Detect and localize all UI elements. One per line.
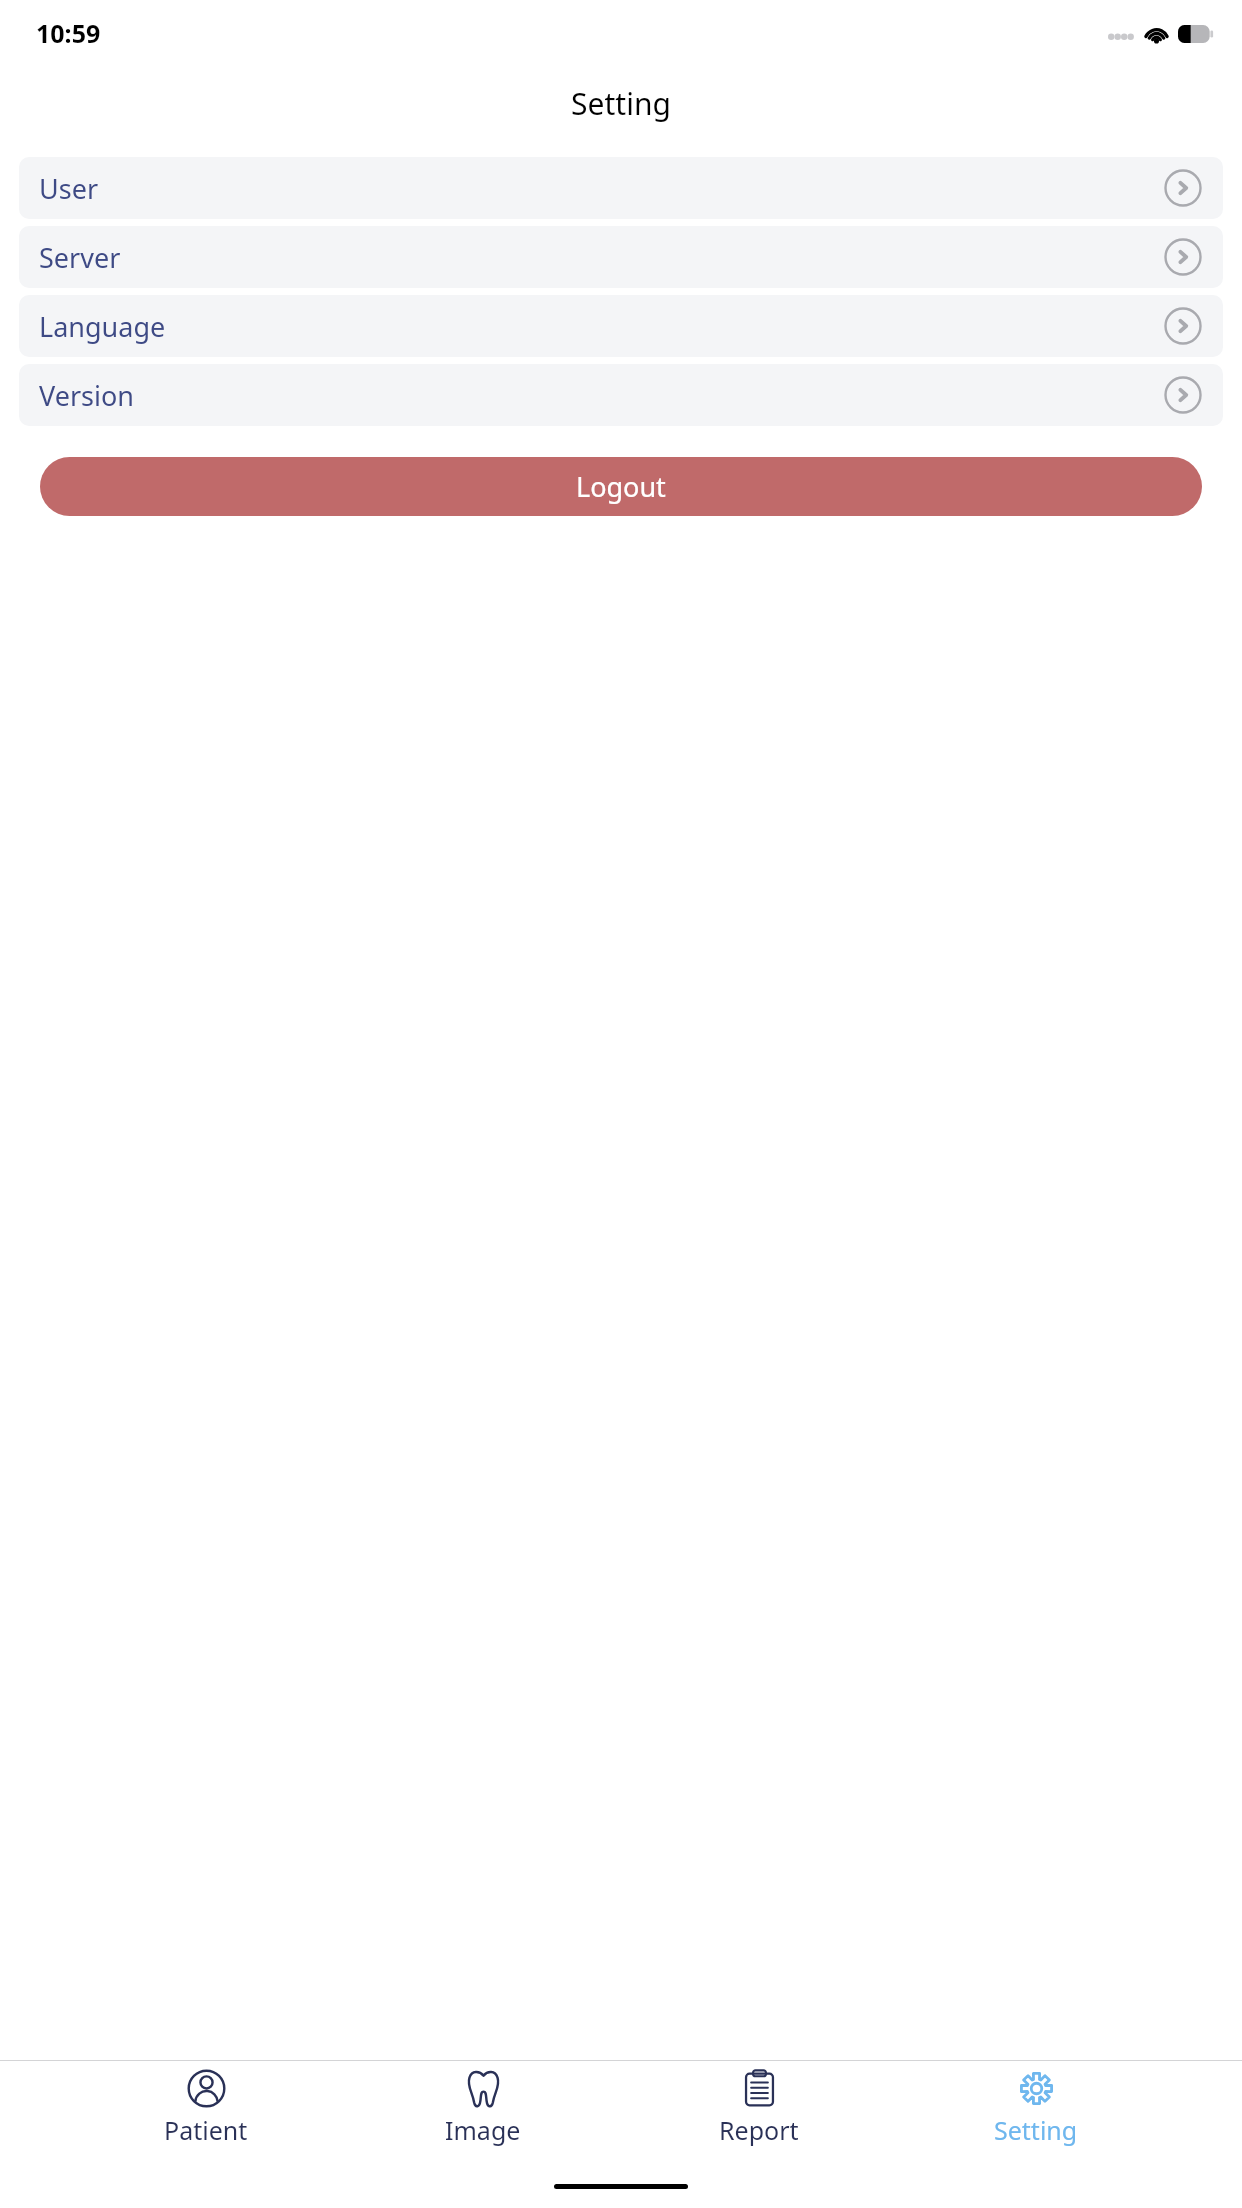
staticText: Version: [39, 377, 134, 414]
button[interactable]: Language: [19, 295, 1223, 357]
staticText: 10:59: [36, 16, 101, 50]
staticText: Server: [39, 239, 121, 276]
button[interactable]: User: [19, 157, 1223, 219]
staticText: Image: [445, 2113, 521, 2147]
staticText: Setting: [571, 83, 671, 124]
button[interactable]: Server: [19, 226, 1223, 288]
button[interactable]: Setting: [966, 2061, 1106, 2147]
button[interactable]: Version: [19, 364, 1223, 426]
button[interactable]: Patient: [136, 2061, 276, 2147]
staticText: Patient: [164, 2113, 248, 2147]
button[interactable]: Image: [413, 2061, 553, 2147]
button[interactable]: Logout: [40, 457, 1202, 516]
staticText: Logout: [576, 468, 666, 505]
staticText: Report: [719, 2113, 799, 2147]
button[interactable]: Report: [689, 2061, 829, 2147]
staticText: User: [39, 170, 99, 207]
staticText: Setting: [994, 2113, 1078, 2147]
staticText: Language: [39, 308, 166, 345]
